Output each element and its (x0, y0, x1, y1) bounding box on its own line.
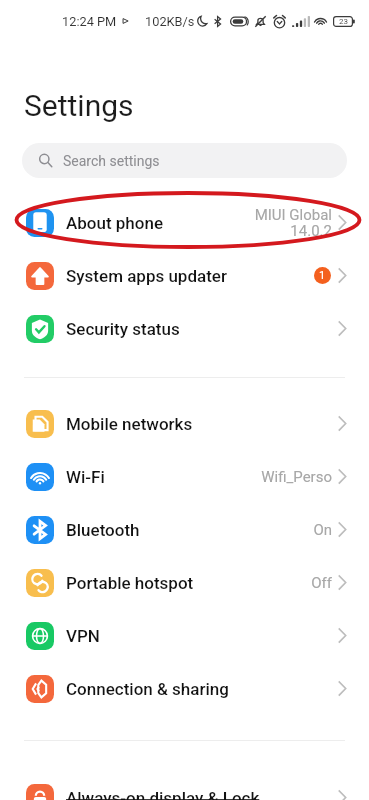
staticText: 1 (319, 269, 326, 282)
staticText: System apps updater (66, 266, 314, 286)
button[interactable]: System apps updater (0, 249, 369, 302)
button[interactable]: Search settings (22, 143, 347, 178)
button[interactable]: Wi-Fi (0, 450, 369, 503)
button[interactable]: Always-on display & Lock (0, 771, 369, 800)
staticText: 102KB/s (145, 14, 195, 29)
staticText: About phone (66, 213, 254, 233)
button[interactable]: VPN (0, 609, 369, 662)
staticText: Mobile networks (66, 414, 338, 434)
staticText: Off (311, 574, 332, 592)
button[interactable]: Bluetooth (0, 503, 369, 556)
staticText: 23 (339, 17, 348, 26)
staticText: Wi-Fi (66, 467, 261, 487)
staticText: Settings (24, 88, 134, 123)
button[interactable]: Security status (0, 302, 369, 355)
staticText: Search settings (63, 153, 160, 169)
staticText: Connection & sharing (66, 679, 338, 699)
button[interactable]: About phone (0, 196, 369, 249)
staticText: Security status (66, 319, 338, 339)
staticText: Bluetooth (66, 520, 313, 540)
staticText: MIUI Global 14.0.2 (254, 206, 332, 240)
button[interactable]: Mobile networks (0, 397, 369, 450)
staticText: VPN (66, 626, 338, 646)
button[interactable]: Connection & sharing (0, 662, 369, 715)
staticText: Always-on display & Lock (66, 788, 338, 800)
staticText: Portable hotspot (66, 573, 311, 593)
staticText: On (313, 521, 332, 539)
staticText: Wifi_Perso (261, 468, 332, 486)
staticText: 12:24 PM (62, 14, 117, 29)
button[interactable]: Portable hotspot (0, 556, 369, 609)
